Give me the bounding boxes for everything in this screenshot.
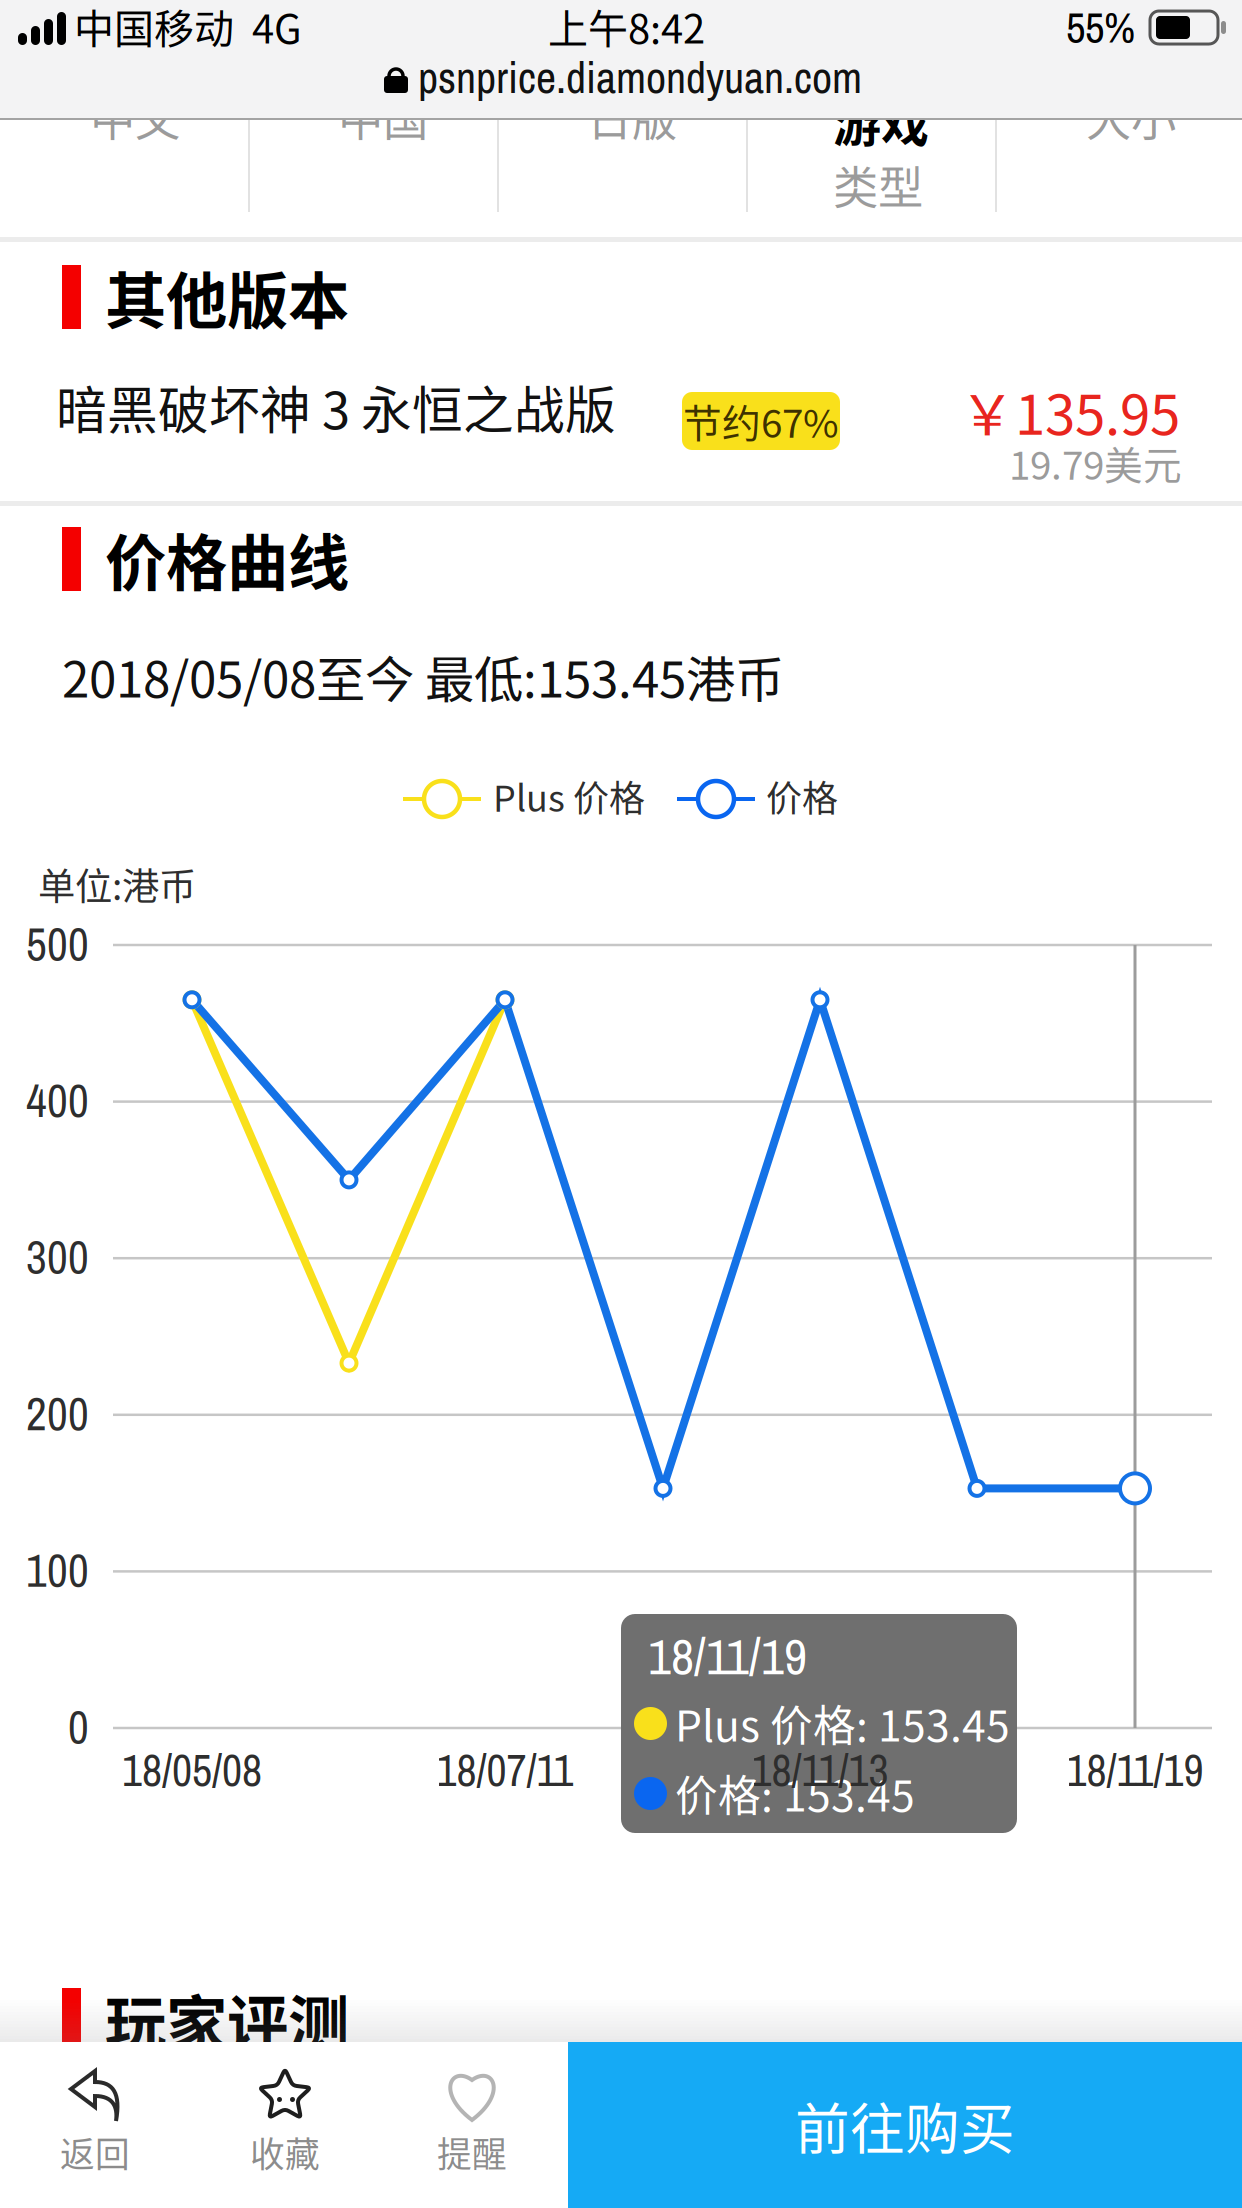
staticText: 中国移动 — [74, 0, 234, 55]
staticText: 19.79美元 — [1009, 435, 1182, 491]
button[interactable]: 前往购买 — [568, 2042, 1242, 2208]
staticText: 18/11/19 — [1066, 1740, 1203, 1800]
staticText: 日版 — [587, 84, 677, 150]
staticText: ￥135.95 — [960, 371, 1180, 451]
staticText: 价格曲线 — [105, 515, 349, 603]
staticText: 18/11/19 — [648, 1622, 807, 1690]
staticText: Plus 价格: 153.45 — [675, 1692, 1010, 1754]
staticText: 18/05/08 — [122, 1740, 262, 1800]
staticText: 游戏 — [833, 86, 929, 155]
staticText: 价格: 153.45 — [675, 1762, 915, 1824]
staticText: 2018/05/08至今 最低:153.45港币 — [62, 640, 784, 712]
staticText: 单位:港币 — [38, 857, 196, 911]
staticText: 18/07/11 — [436, 1740, 573, 1800]
button[interactable]: 提醒 — [382, 2069, 562, 2208]
staticText: 300 — [26, 1227, 89, 1288]
button[interactable]: 返回 — [5, 2069, 185, 2208]
staticText: 价格 — [766, 770, 838, 822]
staticText: 400 — [26, 1070, 89, 1131]
staticText: 200 — [26, 1383, 89, 1444]
staticText: 其他版本 — [105, 253, 349, 341]
staticText: 类型 — [833, 152, 923, 218]
staticText: 中文 — [90, 84, 180, 150]
staticText: 节约67% — [683, 393, 839, 449]
staticText: 提醒 — [437, 2127, 507, 2177]
staticText: Plus 价格 — [493, 770, 645, 822]
staticText: 55% — [1066, 0, 1135, 56]
button[interactable]: 暗黑破坏神 3 永恒之战版 — [0, 0, 1242, 130]
staticText: 中国 — [338, 84, 428, 150]
staticText: 暗黑破坏神 3 永恒之战版 — [56, 370, 616, 444]
staticText: 100 — [26, 1540, 89, 1601]
staticText: 上午8:42 — [548, 0, 705, 55]
staticText: 前往购买 — [795, 2085, 1015, 2165]
staticText: 4G — [252, 0, 302, 55]
staticText: 玩家评测 — [105, 1976, 349, 2064]
staticText: 收藏 — [250, 2127, 320, 2177]
staticText: 大小 — [1086, 84, 1176, 150]
staticText: psnprice.diamondyuan.com — [418, 47, 862, 107]
staticText: 0 — [68, 1696, 89, 1758]
button[interactable]: 收藏 — [195, 2069, 375, 2208]
staticText: 返回 — [60, 2127, 130, 2177]
staticText: 500 — [26, 913, 89, 975]
staticText: 18/11/13 — [751, 1740, 888, 1800]
